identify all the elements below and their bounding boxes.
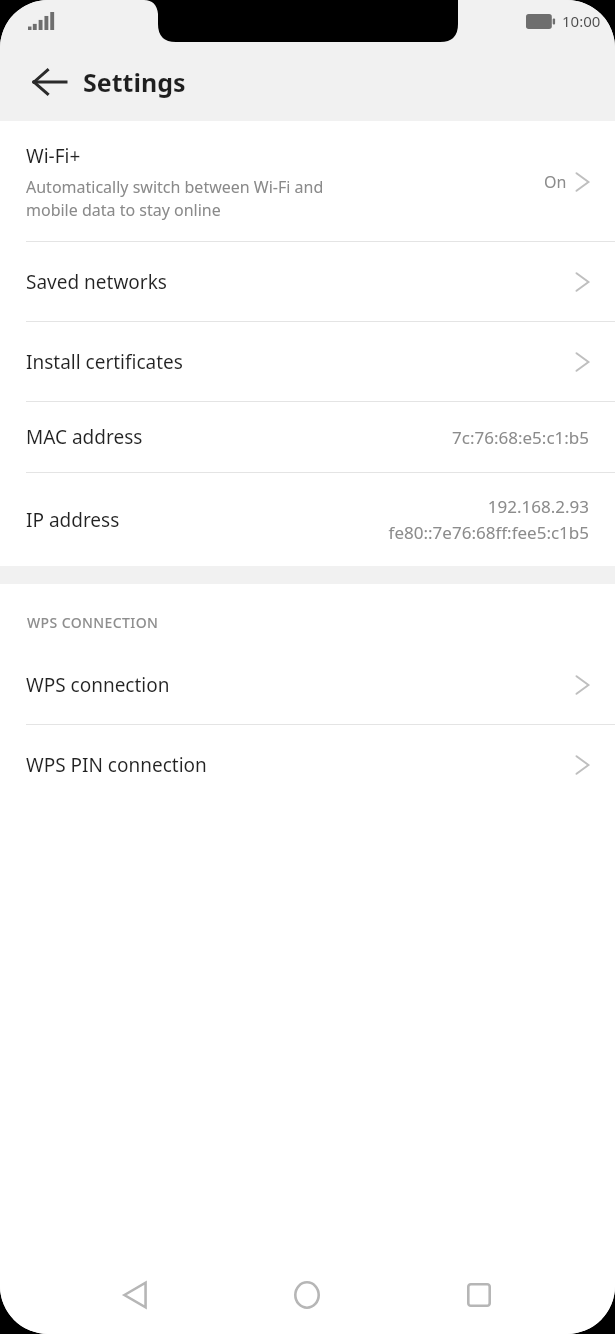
- button[interactable]: Install certificates: [0, 322, 615, 401]
- staticText: Wi-Fi+: [26, 143, 81, 169]
- staticText: IP address: [26, 507, 380, 533]
- staticText: Saved networks: [26, 269, 576, 295]
- staticText: 192.168.2.93 fe80::7e76:68ff:fee5:c1b5: [388, 495, 589, 544]
- button[interactable]: MAC address: [0, 402, 615, 472]
- staticText: WPS CONNECTION: [27, 613, 159, 632]
- staticText: Settings: [83, 65, 186, 99]
- staticText: 7c:76:68:e5:c1:b5: [452, 426, 589, 449]
- staticText: Automatically switch between Wi-Fi and m…: [26, 176, 324, 221]
- button[interactable]: Back: [99, 1259, 171, 1331]
- staticText: WPS connection: [26, 672, 576, 698]
- staticText: On: [544, 171, 567, 193]
- staticText: 10:00: [562, 11, 601, 31]
- button[interactable]: WPS connection: [0, 645, 615, 724]
- button[interactable]: Saved networks: [0, 242, 615, 321]
- staticText: Install certificates: [26, 349, 576, 375]
- staticText: MAC address: [26, 424, 444, 450]
- button[interactable]: WPS PIN connection: [0, 725, 615, 804]
- button[interactable]: IP address: [0, 473, 615, 566]
- button[interactable]: Home: [271, 1259, 343, 1331]
- staticText: WPS PIN connection: [26, 752, 576, 778]
- button[interactable]: Back: [15, 48, 83, 116]
- button[interactable]: Wi-Fi+: [0, 121, 615, 241]
- button[interactable]: Recent apps: [443, 1259, 515, 1331]
